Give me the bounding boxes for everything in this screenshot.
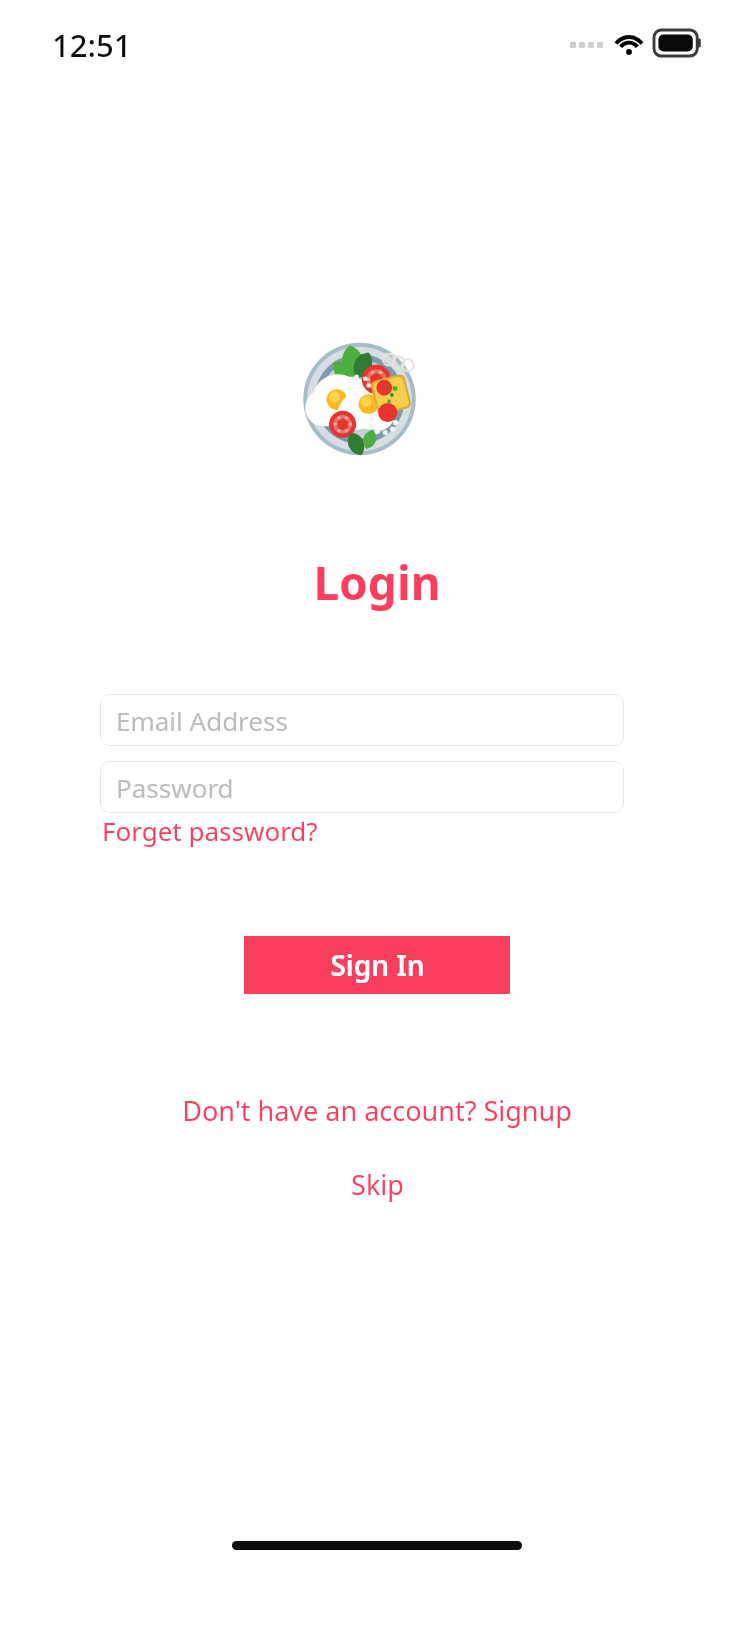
staticText: 12:51 [52,24,132,66]
button[interactable]: Email Address [100,694,624,746]
staticText: Skip [351,1166,404,1203]
staticText: Email Address [116,703,288,738]
button[interactable]: Don't have an account? Signup [176,1088,578,1133]
button[interactable]: Forget password? [100,810,320,851]
staticText: Forget password? [102,813,318,848]
staticText: Password [116,770,234,805]
staticText: Login [313,551,441,614]
button[interactable]: Sign In [244,936,510,994]
button[interactable]: Password [100,761,624,813]
staticText: Sign In [330,946,425,984]
button[interactable]: Skip [341,1162,414,1207]
staticText: Don't have an account? Signup [182,1092,572,1129]
